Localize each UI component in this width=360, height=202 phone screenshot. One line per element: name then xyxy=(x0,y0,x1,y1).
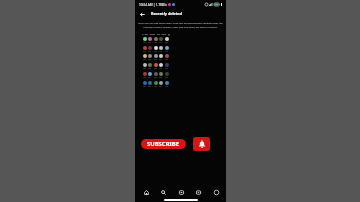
staticText: 11:05 AT&T 4G 83% xyxy=(142,33,167,36)
button[interactable]: App icon xyxy=(153,54,158,60)
staticText: SUBSCRIBE xyxy=(147,140,180,148)
button[interactable]: App icon xyxy=(147,46,152,52)
button[interactable]: App icon xyxy=(142,72,147,78)
button[interactable]: App icon xyxy=(147,81,152,87)
button[interactable]: App icon xyxy=(142,63,147,69)
button[interactable]: App icon xyxy=(158,81,163,87)
staticText: Only you can see these texts. They will … xyxy=(137,21,224,29)
button[interactable]: App icon xyxy=(153,72,158,78)
button[interactable]: App icon xyxy=(147,54,152,60)
button[interactable]: Search xyxy=(156,186,170,198)
button[interactable]: Account xyxy=(209,186,223,198)
staticText: Recently deleted xyxy=(151,11,182,16)
button[interactable]: App icon xyxy=(142,81,147,87)
button[interactable]: App icon xyxy=(147,37,152,43)
button[interactable]: App icon xyxy=(164,54,169,60)
button[interactable]: App icon xyxy=(164,72,169,78)
button[interactable]: App icon xyxy=(158,37,163,43)
button[interactable]: App icon xyxy=(158,46,163,52)
button[interactable]: App icon xyxy=(142,37,147,43)
button[interactable]: App icon xyxy=(153,63,158,69)
button[interactable]: Subscriptions xyxy=(191,186,205,198)
button[interactable]: Notifications xyxy=(193,137,210,151)
button[interactable]: App icon xyxy=(142,54,147,60)
button[interactable]: App icon xyxy=(147,72,152,78)
button[interactable]: App icon xyxy=(164,63,169,69)
button[interactable]: App icon xyxy=(153,37,158,43)
button[interactable]: App icon xyxy=(153,81,158,87)
button[interactable]: App icon xyxy=(158,63,163,69)
button[interactable]: App icon xyxy=(164,46,169,52)
button[interactable]: App icon xyxy=(142,46,147,52)
button[interactable]: App icon xyxy=(164,37,169,43)
button[interactable]: Back xyxy=(138,10,146,18)
button[interactable]: SUBSCRIBE xyxy=(141,139,186,149)
button[interactable]: App icon xyxy=(158,72,163,78)
staticText: 10:34 AM | 1.7KB/s xyxy=(139,3,167,7)
button[interactable]: App icon xyxy=(147,63,152,69)
button[interactable]: App icon xyxy=(158,54,163,60)
button[interactable]: Home xyxy=(139,186,153,198)
button[interactable]: Shorts xyxy=(174,186,188,198)
button[interactable]: App icon xyxy=(153,46,158,52)
button[interactable]: App icon xyxy=(164,81,169,87)
